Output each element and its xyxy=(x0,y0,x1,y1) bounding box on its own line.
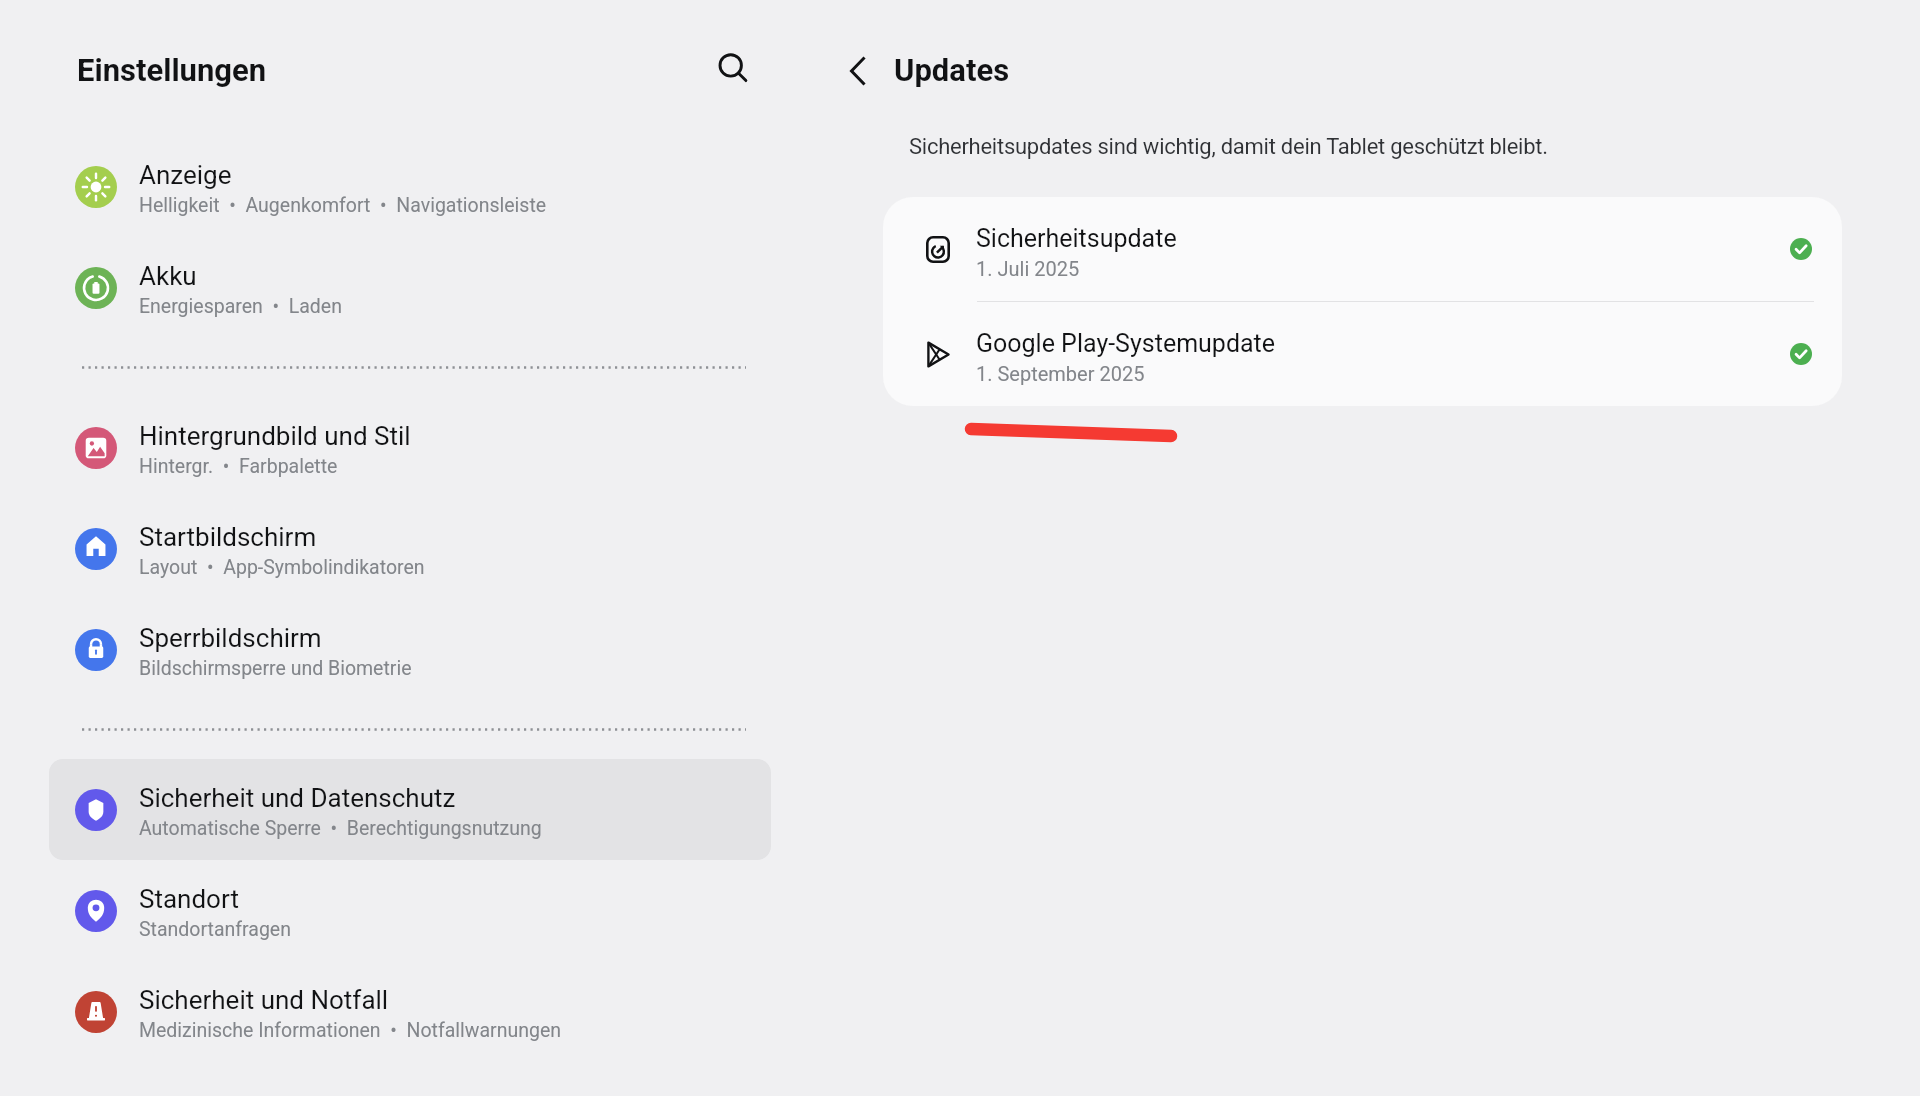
button[interactable]: Sicherheit und Datenschutz xyxy=(49,759,771,860)
button[interactable]: Suche xyxy=(709,44,757,92)
staticText: Energiesparen • Laden xyxy=(139,295,342,318)
staticText: Automatische Sperre • Berechtigungsnutzu… xyxy=(139,817,542,840)
button[interactable]: Hintergrundbild und Stil xyxy=(49,397,771,498)
button[interactable]: Zurück xyxy=(834,48,880,94)
button[interactable]: Sicherheitsupdate xyxy=(883,197,1842,301)
staticText: Hintergrundbild und Stil xyxy=(139,421,411,451)
button[interactable]: Sicherheit und Notfall xyxy=(49,961,771,1062)
staticText: Sicherheitsupdates sind wichtig, damit d… xyxy=(909,134,1548,160)
staticText: 1. Juli 2025 xyxy=(976,257,1080,280)
staticText: Standort xyxy=(139,884,239,914)
button[interactable]: Sperrbildschirm xyxy=(49,599,771,700)
staticText: Helligkeit • Augenkomfort • Navigationsl… xyxy=(139,194,547,217)
staticText: Anzeige xyxy=(139,160,232,190)
staticText: Einstellungen xyxy=(77,52,267,88)
staticText: Akku xyxy=(139,261,197,291)
staticText: Standortanfragen xyxy=(139,918,291,941)
staticText: Layout • App-Symbolindikatoren xyxy=(139,556,425,579)
button[interactable]: Anzeige xyxy=(49,136,771,237)
staticText: Hintergr. • Farbpalette xyxy=(139,455,338,478)
staticText: Sperrbildschirm xyxy=(139,623,322,653)
staticText: 1. September 2025 xyxy=(976,362,1145,385)
staticText: Medizinische Informationen • Notfallwarn… xyxy=(139,1019,562,1042)
staticText: Google Play-Systemupdate xyxy=(976,329,1276,358)
staticText: Sicherheit und Notfall xyxy=(139,985,389,1015)
staticText: Updates xyxy=(894,52,1010,88)
button[interactable]: Standort xyxy=(49,860,771,961)
staticText: Sicherheitsupdate xyxy=(976,224,1177,253)
button[interactable]: Google Play-Systemupdate xyxy=(883,302,1842,406)
staticText: Bildschirmsperre und Biometrie xyxy=(139,657,412,680)
button[interactable]: Startbildschirm xyxy=(49,498,771,599)
button[interactable]: Akku xyxy=(49,237,771,338)
staticText: Startbildschirm xyxy=(139,522,317,552)
staticText: Sicherheit und Datenschutz xyxy=(139,783,456,813)
